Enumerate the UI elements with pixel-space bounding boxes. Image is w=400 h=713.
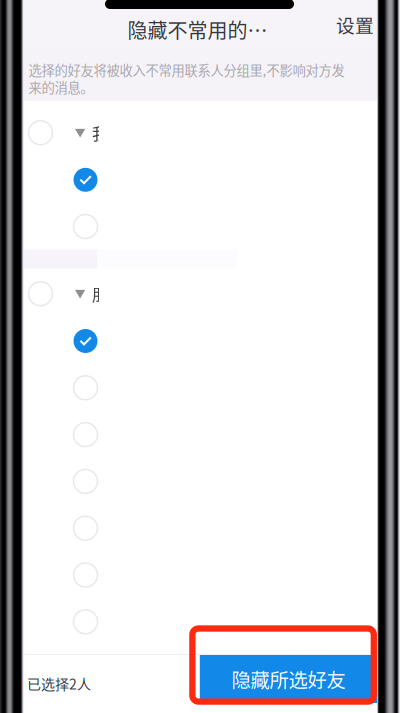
button[interactable]: 我 [24, 109, 377, 156]
staticText: 朋 [92, 282, 108, 305]
staticText: 隐藏所选好友 [231, 665, 345, 693]
button[interactable]: Contact [24, 599, 377, 645]
staticText: 隐藏不常用的… [127, 15, 267, 44]
staticText: 已选择2人 [27, 673, 91, 694]
staticText: 我 [92, 121, 108, 144]
button[interactable]: Selected contact [24, 157, 377, 203]
button[interactable]: 隐藏所选好友 [200, 655, 377, 703]
button[interactable]: 设置 [328, 3, 382, 46]
button[interactable]: Selected contact [24, 318, 377, 364]
staticText: 选择的好友将被收入不常用联系人分组里,不影响对方发 [29, 60, 345, 79]
staticText: 设置 [336, 11, 374, 38]
staticText: 来的消息。 [29, 77, 94, 97]
button[interactable]: 朋 [24, 270, 377, 317]
